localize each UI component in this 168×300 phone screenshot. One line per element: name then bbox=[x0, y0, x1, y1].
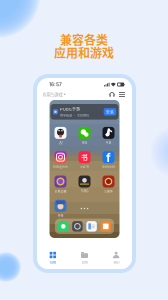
staticText: 书 bbox=[81, 152, 88, 162]
staticText: PUBG bbox=[80, 189, 88, 193]
staticText: 应用与游戏 bbox=[42, 91, 62, 98]
staticText: 王者荣耀 bbox=[54, 189, 66, 193]
staticText: 管理 bbox=[81, 259, 87, 264]
button[interactable]: 原神 bbox=[50, 199, 70, 217]
staticText: 应用 bbox=[50, 259, 56, 264]
button[interactable]: f bbox=[98, 151, 118, 169]
staticText: 应用和游戏 bbox=[54, 44, 114, 61]
button[interactable]: 王者荣耀 bbox=[50, 175, 70, 193]
button[interactable]: 我的 bbox=[100, 247, 132, 269]
staticText: Facebook bbox=[101, 165, 115, 169]
button[interactable]: Headphones bbox=[109, 91, 115, 97]
staticText: Instagram bbox=[53, 165, 68, 169]
staticText: 我的 bbox=[113, 259, 119, 264]
button[interactable]: 管理 bbox=[69, 247, 100, 269]
staticText: 三国杀 bbox=[104, 189, 113, 193]
button[interactable]: Instagram bbox=[50, 151, 70, 169]
staticText: 兼容各类 bbox=[60, 31, 108, 48]
button[interactable]: 三国杀 bbox=[98, 175, 118, 193]
staticText: f bbox=[106, 151, 111, 165]
staticText: 原神 bbox=[57, 213, 63, 217]
button[interactable]: 应用 bbox=[37, 247, 69, 269]
staticText: 微信 bbox=[81, 140, 87, 144]
staticText: PUBG手游 bbox=[60, 106, 80, 112]
button[interactable]: Menu bbox=[119, 92, 125, 97]
staticText: 抖音 bbox=[105, 140, 111, 144]
staticText: 16:57 bbox=[49, 82, 62, 87]
button[interactable]: 抖音 bbox=[98, 127, 118, 145]
staticText: 畅享极速 · 全民畅玩 bbox=[60, 113, 89, 117]
staticText: 安装 bbox=[106, 109, 114, 114]
staticText: QQ bbox=[58, 140, 62, 144]
button[interactable]: 书 bbox=[74, 151, 94, 169]
button[interactable]: 微信 bbox=[74, 127, 94, 145]
staticText: 小红书 bbox=[80, 165, 89, 169]
button[interactable]: PUBG bbox=[74, 175, 94, 193]
button[interactable]: 应用与游戏 bbox=[41, 91, 67, 98]
button[interactable]: QQ bbox=[50, 127, 70, 145]
